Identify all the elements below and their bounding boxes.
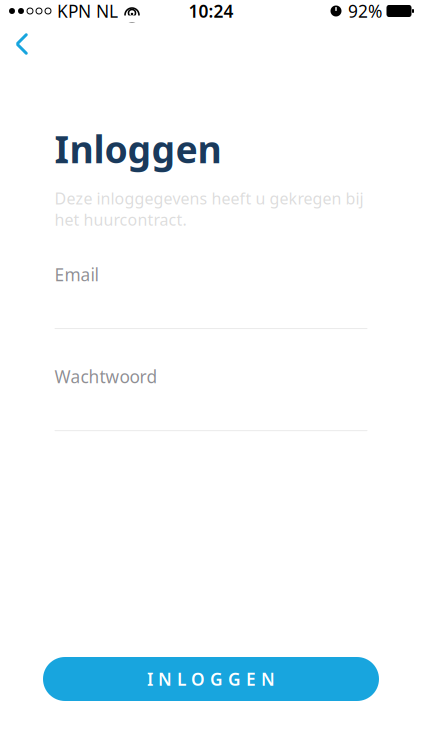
staticText: I N L O G G E N bbox=[147, 667, 275, 690]
staticText: Inloggen bbox=[54, 124, 221, 174]
staticText: 10:24 bbox=[188, 0, 233, 22]
staticText: Wachtwoord bbox=[54, 365, 157, 388]
staticText: Email bbox=[54, 263, 98, 286]
staticText: KPN NL bbox=[57, 0, 118, 22]
button[interactable]: I N L O G G E N bbox=[43, 657, 379, 701]
staticText: 92% bbox=[348, 0, 382, 22]
button[interactable]: Back bbox=[0, 22, 44, 66]
staticText: Deze inloggegevens heeft u gekregen bij … bbox=[54, 188, 363, 230]
